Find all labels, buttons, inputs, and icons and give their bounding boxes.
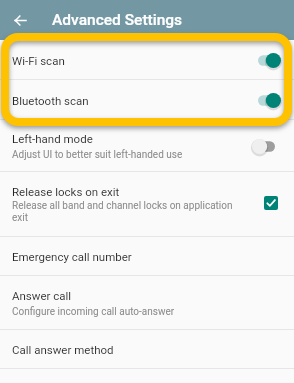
button[interactable]: Answer call (0, 276, 294, 330)
staticText: Configure incoming call auto-answer (12, 306, 175, 318)
staticText: Answer call (12, 289, 72, 302)
button[interactable]: Wi-Fi scan (0, 40, 294, 80)
staticText: Wi-Fi scan (12, 54, 65, 67)
staticText: Bluetooth scan (12, 94, 89, 107)
button[interactable]: Bluetooth scan (0, 80, 294, 120)
button[interactable]: Release locks on exit checkbox (264, 196, 278, 210)
button[interactable]: Bluetooth scan toggle (252, 92, 281, 109)
button[interactable]: Release locks on exit (0, 172, 294, 237)
staticText: Advanced Settings (52, 11, 183, 29)
button[interactable]: Emergency call number (0, 237, 294, 276)
button[interactable]: Left-hand mode toggle (252, 138, 281, 155)
staticText: Emergency call number (12, 250, 132, 263)
staticText: Left-hand mode (12, 132, 93, 145)
staticText: Release all band and channel locks on ap… (12, 200, 238, 224)
button[interactable]: Left-hand mode (0, 120, 294, 172)
staticText: Release locks on exit (12, 185, 120, 198)
staticText: Adjust UI to better suit left-handed use (12, 149, 183, 161)
staticText: Call answer method (12, 343, 114, 356)
button[interactable]: Call answer method (0, 330, 294, 369)
button[interactable]: Wi-Fi scan toggle (252, 52, 281, 69)
button[interactable]: Back (6, 6, 34, 34)
